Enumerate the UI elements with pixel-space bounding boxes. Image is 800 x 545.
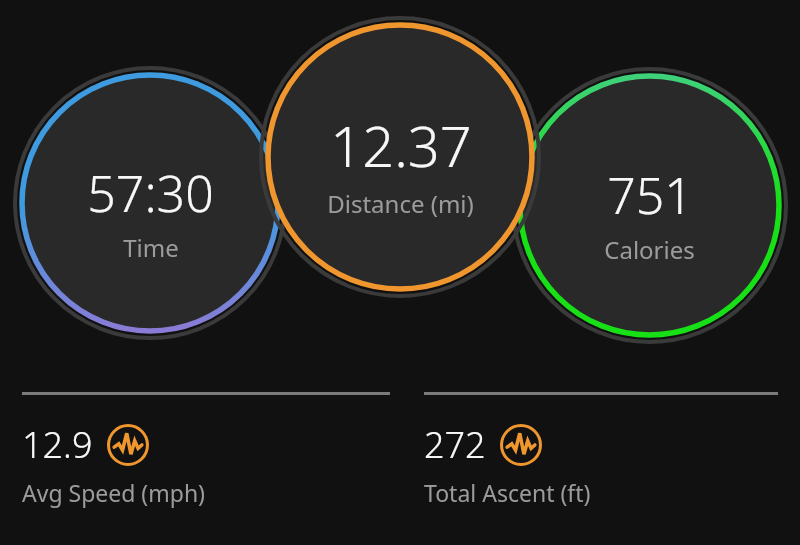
staticText: Time [123,231,179,264]
staticText: 751 [607,161,693,229]
staticText: Distance (mi) [327,187,474,220]
button[interactable]: Time 57:30 [13,66,287,340]
staticText: Calories [604,233,695,266]
staticText: 272 [424,420,486,469]
staticText: 57:30 [87,159,214,227]
staticText: Total Ascent (ft) [424,477,591,508]
button[interactable]: 12.9 [0,410,206,508]
staticText: 12.37 [330,107,472,183]
staticText: 12.9 [22,420,93,469]
button[interactable]: Calories 751 [511,67,788,344]
button[interactable]: 272 [402,410,591,508]
button[interactable]: Distance 12.37 miles [259,16,541,298]
staticText: Avg Speed (mph) [22,477,206,508]
